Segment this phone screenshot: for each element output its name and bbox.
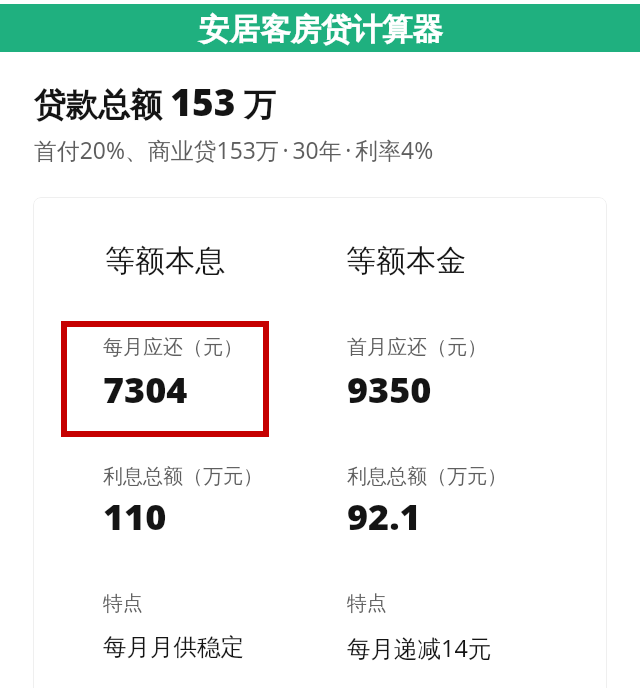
- staticText: 7304: [103, 365, 188, 414]
- staticText: 首付20%、商业贷153万 · 30年 · 利率4%: [34, 135, 434, 166]
- staticText: 每月应还（元）: [103, 335, 243, 360]
- button[interactable]: [314, 230, 546, 680]
- staticText: 92.1: [347, 492, 421, 541]
- staticText: 利息总额（万元）: [103, 464, 263, 489]
- staticText: 每月月供稳定: [103, 632, 244, 662]
- staticText: 特点: [347, 591, 387, 616]
- staticText: 等额本金: [346, 242, 466, 280]
- staticText: 每月递减14元: [347, 632, 492, 664]
- staticText: 利息总额（万元）: [347, 464, 507, 489]
- staticText: 安居客房贷计算器: [199, 11, 443, 49]
- staticText: 特点: [103, 591, 143, 616]
- staticText: 贷款总额 153 万: [34, 76, 276, 126]
- staticText: 110: [103, 492, 167, 541]
- other: 每月应还 7304 元（重点标注）: [61, 321, 269, 437]
- staticText: 9350: [347, 365, 432, 414]
- staticText: 等额本息: [105, 242, 225, 280]
- button[interactable]: 安居客房贷计算器: [0, 4, 640, 52]
- staticText: 首月应还（元）: [347, 335, 487, 360]
- button[interactable]: [73, 230, 305, 680]
